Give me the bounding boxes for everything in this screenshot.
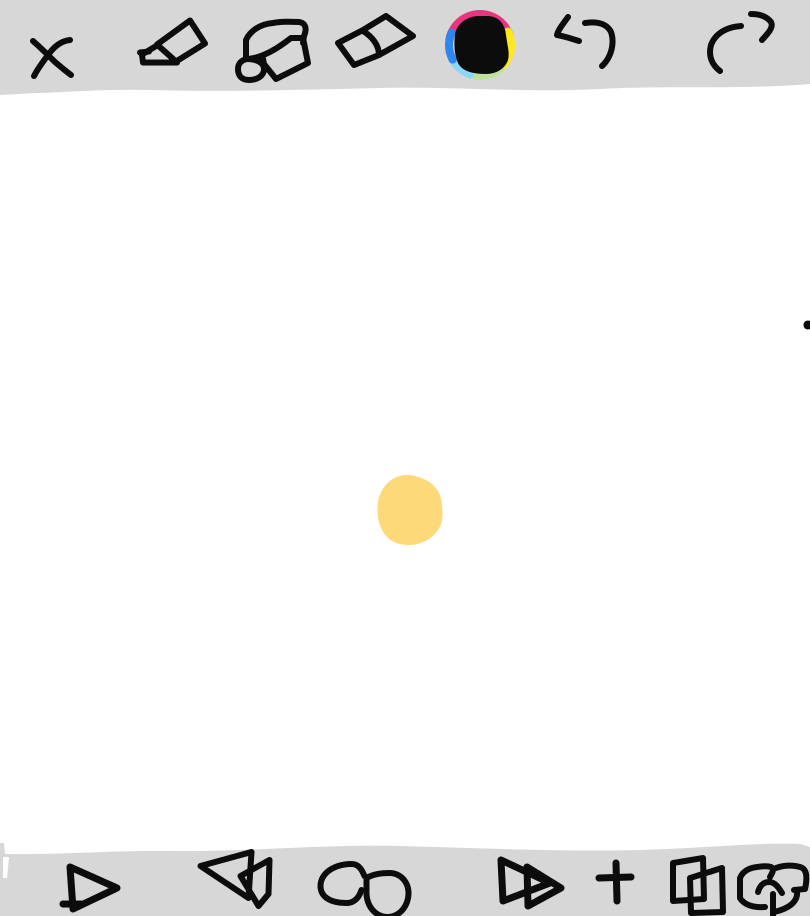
button[interactable]: Pen (130, 5, 216, 77)
button[interactable]: Select (51, 854, 131, 916)
button[interactable]: Duplicate (663, 850, 735, 916)
button[interactable]: Previous (189, 841, 281, 916)
button[interactable]: Undo (543, 3, 625, 79)
button[interactable]: Redo (698, 2, 782, 82)
button[interactable]: Color (440, 4, 520, 86)
button[interactable]: Next (492, 849, 570, 916)
button[interactable]: Upload (731, 854, 810, 916)
button[interactable]: Highlighter (228, 10, 316, 90)
button[interactable]: Close (16, 22, 90, 96)
button[interactable]: Add (587, 853, 647, 913)
button[interactable]: Eraser (330, 3, 422, 77)
button[interactable]: Shapes (313, 855, 419, 916)
